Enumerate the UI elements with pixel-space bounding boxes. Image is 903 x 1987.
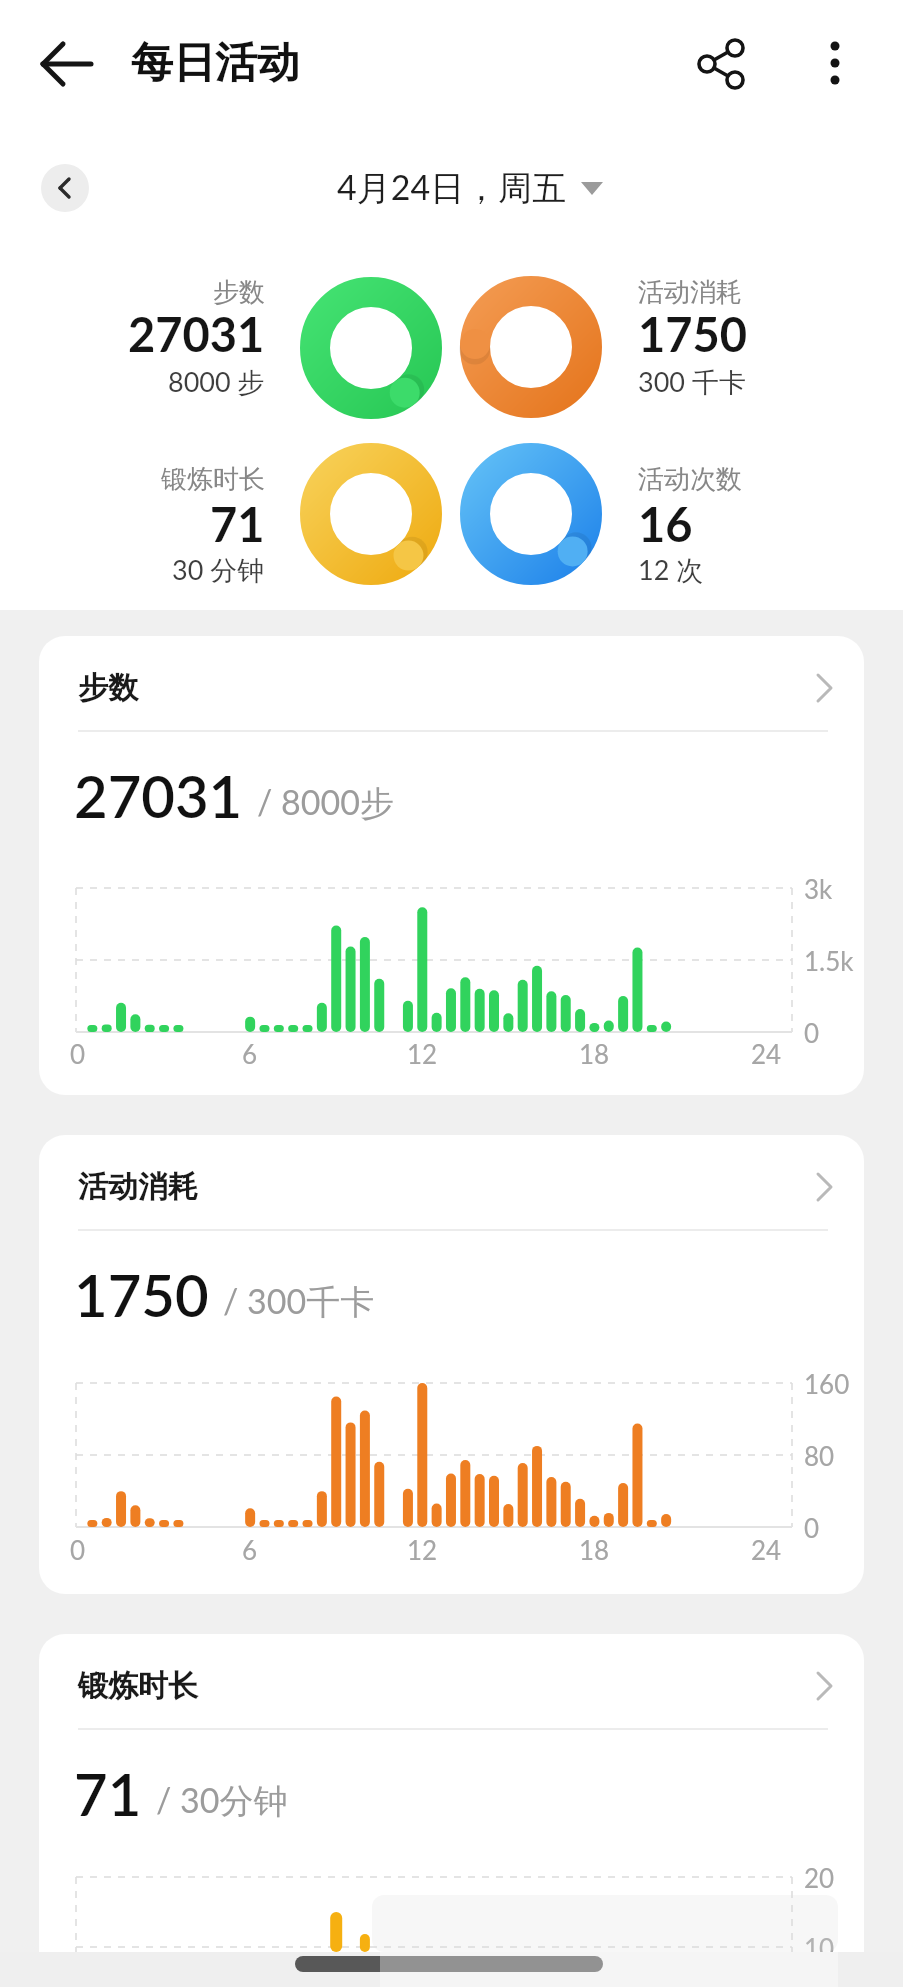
staticText: 1.5k <box>804 945 854 975</box>
staticText: 71 <box>74 1759 142 1829</box>
staticText: 160 <box>804 1368 850 1398</box>
staticText: 每日活动 <box>131 37 299 90</box>
staticText: 0 <box>804 1017 820 1047</box>
staticText: 活动消耗 <box>638 276 742 309</box>
staticText: 6 <box>242 1038 258 1068</box>
staticText: 锻炼时长 <box>161 463 265 496</box>
staticText: 300 千卡 <box>638 365 746 400</box>
staticText: 锻炼时长 <box>78 1667 198 1705</box>
staticText: 16 <box>638 496 693 552</box>
button[interactable] <box>41 164 89 212</box>
staticText: / 300千卡 <box>223 1280 375 1324</box>
staticText: 活动次数 <box>638 463 742 496</box>
staticText: 18 <box>579 1534 610 1564</box>
staticText: 12 <box>407 1038 438 1068</box>
button[interactable] <box>806 22 864 94</box>
button[interactable]: 4月24日，周五 <box>337 166 567 210</box>
staticText: 27031 <box>74 761 243 831</box>
staticText: 0 <box>70 1038 86 1068</box>
staticText: 活动消耗 <box>78 1168 198 1206</box>
staticText: 3k <box>804 873 833 903</box>
staticText: 6 <box>242 1534 258 1564</box>
staticText: 步数 <box>213 276 265 309</box>
button[interactable] <box>39 636 864 1095</box>
staticText: 12 <box>407 1534 438 1564</box>
staticText: 1750 <box>74 1260 209 1330</box>
button[interactable] <box>676 22 760 106</box>
staticText: 0 <box>804 1512 820 1542</box>
button[interactable] <box>39 1135 864 1594</box>
staticText: 18 <box>579 1038 610 1068</box>
staticText: 4月24日，周五 <box>337 166 567 210</box>
staticText: 0 <box>70 1534 86 1564</box>
staticText: 1750 <box>638 306 748 362</box>
button[interactable] <box>30 28 102 100</box>
staticText: 8000 步 <box>168 365 265 400</box>
staticText: 71 <box>210 496 265 552</box>
staticText: 步数 <box>78 669 138 707</box>
staticText: / 8000步 <box>257 781 394 825</box>
staticText: / 30分钟 <box>156 1779 288 1823</box>
staticText: 10 <box>804 1932 835 1962</box>
staticText: 12 次 <box>638 553 704 588</box>
staticText: 30 分钟 <box>172 553 265 588</box>
staticText: 80 <box>804 1440 835 1470</box>
staticText: 27031 <box>128 306 265 362</box>
staticText: 20 <box>804 1862 835 1892</box>
button[interactable] <box>39 1634 864 1987</box>
staticText: 24 <box>751 1534 782 1564</box>
staticText: 24 <box>751 1038 782 1068</box>
